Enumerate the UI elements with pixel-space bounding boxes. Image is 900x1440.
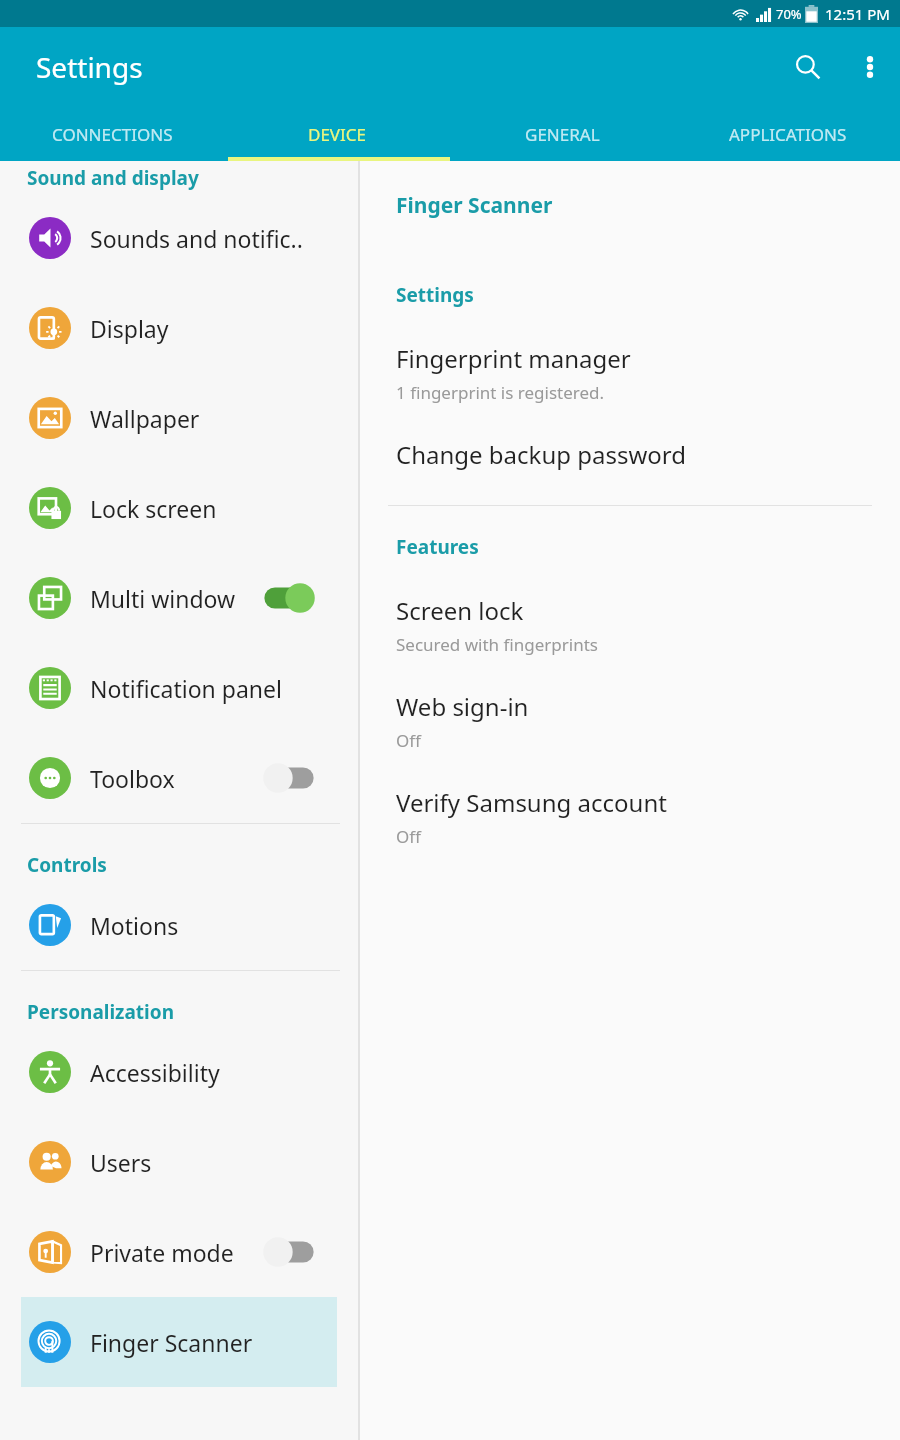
button[interactable]: Web sign-in xyxy=(360,690,900,752)
button[interactable]: Search xyxy=(776,35,840,99)
staticText: Sound and display xyxy=(27,165,199,191)
staticText: Screen lock xyxy=(396,594,524,627)
staticText: DEVICE xyxy=(308,123,367,146)
staticText: Features xyxy=(396,534,479,560)
button[interactable]: More options xyxy=(840,37,900,97)
staticText: Secured with fingerprints xyxy=(396,633,598,656)
button[interactable]: APPLICATIONS xyxy=(675,107,900,161)
staticText: Users xyxy=(90,1147,331,1178)
staticText: Finger Scanner xyxy=(396,191,553,220)
button[interactable]: Users xyxy=(21,1117,337,1207)
staticText: Personalization xyxy=(27,999,175,1025)
button[interactable]: Accessibility xyxy=(21,1027,337,1117)
staticText: APPLICATIONS xyxy=(729,123,847,146)
staticText: Wallpaper xyxy=(90,403,331,434)
staticText: 70% xyxy=(776,5,802,23)
staticText: Finger Scanner xyxy=(90,1327,331,1358)
button[interactable]: CONNECTIONS xyxy=(0,107,225,161)
staticText: Settings xyxy=(36,48,143,86)
staticText: Off xyxy=(396,825,421,848)
staticText: Off xyxy=(396,729,421,752)
staticText: 12:51 PM xyxy=(825,4,890,24)
staticText: CONNECTIONS xyxy=(52,123,173,146)
button[interactable]: Sounds and notific.. xyxy=(21,193,337,283)
staticText: Fingerprint manager xyxy=(396,342,631,375)
button[interactable]: Multi window xyxy=(21,553,337,643)
button[interactable]: Toolbox xyxy=(21,733,337,823)
button[interactable]: Wallpaper xyxy=(21,373,337,463)
button[interactable]: Screen lock xyxy=(360,594,900,656)
button[interactable]: DEVICE xyxy=(225,107,450,161)
staticText: Toolbox xyxy=(90,763,261,794)
staticText: Web sign-in xyxy=(396,690,529,723)
staticText: GENERAL xyxy=(525,123,600,146)
staticText: Controls xyxy=(27,852,107,878)
button[interactable]: Motions xyxy=(21,880,337,970)
button[interactable] xyxy=(261,582,317,614)
staticText: Accessibility xyxy=(90,1057,331,1088)
staticText: Settings xyxy=(396,282,474,308)
button[interactable] xyxy=(261,1236,317,1268)
button[interactable]: GENERAL xyxy=(450,107,675,161)
staticText: Private mode xyxy=(90,1237,261,1268)
staticText: Lock screen xyxy=(90,493,331,524)
button[interactable] xyxy=(261,762,317,794)
staticText: Notification panel xyxy=(90,673,331,704)
button[interactable]: Notification panel xyxy=(21,643,337,733)
staticText: Verify Samsung account xyxy=(396,786,667,819)
staticText: Multi window xyxy=(90,583,261,614)
staticText: Sounds and notific.. xyxy=(90,223,331,254)
staticText: Change backup password xyxy=(396,438,687,471)
button[interactable]: Private mode xyxy=(21,1207,337,1297)
button[interactable]: Finger Scanner xyxy=(21,1297,337,1387)
button[interactable]: Fingerprint manager xyxy=(360,342,900,404)
button[interactable]: Lock screen xyxy=(21,463,337,553)
button[interactable]: Verify Samsung account xyxy=(360,786,900,848)
staticText: 1 fingerprint is registered. xyxy=(396,381,605,404)
button[interactable]: Display xyxy=(21,283,337,373)
button[interactable]: Change backup password xyxy=(360,438,900,471)
staticText: Motions xyxy=(90,910,331,941)
staticText: Display xyxy=(90,313,331,344)
